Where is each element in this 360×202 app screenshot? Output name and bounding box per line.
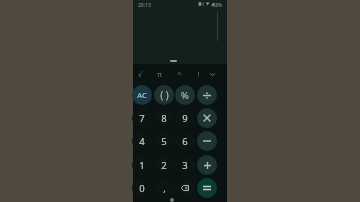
staticText: 9 <box>182 112 188 125</box>
button[interactable]: 5 <box>154 131 174 151</box>
staticText: ^ <box>177 69 182 79</box>
button[interactable]: More options <box>204 65 220 83</box>
staticText: 3 <box>182 159 188 172</box>
button[interactable]: ( ) <box>154 85 174 105</box>
button[interactable]: 1 <box>132 155 152 175</box>
button[interactable]: 9 <box>175 108 195 128</box>
staticText: 20:13 <box>138 2 151 9</box>
staticText: 6 <box>182 135 188 148</box>
button[interactable]: √ <box>131 65 149 83</box>
staticText: AC <box>137 90 147 100</box>
button[interactable]: AC <box>132 85 152 105</box>
button[interactable]: ! <box>189 65 207 83</box>
button[interactable]: 2 <box>154 155 174 175</box>
button[interactable]: 4 <box>132 131 152 151</box>
button[interactable]: 7 <box>132 108 152 128</box>
button[interactable]: = <box>197 178 217 198</box>
staticText: ( ) <box>160 88 169 102</box>
staticText: 4 <box>139 135 145 148</box>
button[interactable]: − <box>197 131 217 151</box>
staticText: ! <box>197 69 200 79</box>
staticText: π <box>157 69 162 79</box>
staticText: 8 <box>161 112 167 125</box>
staticText: 5 <box>161 135 167 148</box>
button[interactable]: ^ <box>170 65 188 83</box>
button[interactable]: 6 <box>175 131 195 151</box>
button[interactable]: 3 <box>175 155 195 175</box>
staticText: 2 <box>161 159 167 172</box>
button[interactable]: % <box>175 85 195 105</box>
button[interactable]: , <box>154 178 174 198</box>
button[interactable]: π <box>150 65 168 83</box>
staticText: 88% <box>213 2 222 8</box>
button[interactable]: 0 <box>132 178 152 198</box>
staticText: √ <box>138 70 143 79</box>
staticText: , <box>163 182 166 195</box>
staticText: 7 <box>139 112 145 125</box>
button[interactable]: 8 <box>154 108 174 128</box>
staticText: % <box>181 89 189 102</box>
button[interactable]: ÷ <box>197 85 217 105</box>
staticText: 1 <box>139 159 145 172</box>
button[interactable]: + <box>197 155 217 175</box>
button[interactable]: × <box>197 108 217 128</box>
button[interactable]: DEL <box>175 178 195 198</box>
staticText: 0 <box>139 182 145 195</box>
